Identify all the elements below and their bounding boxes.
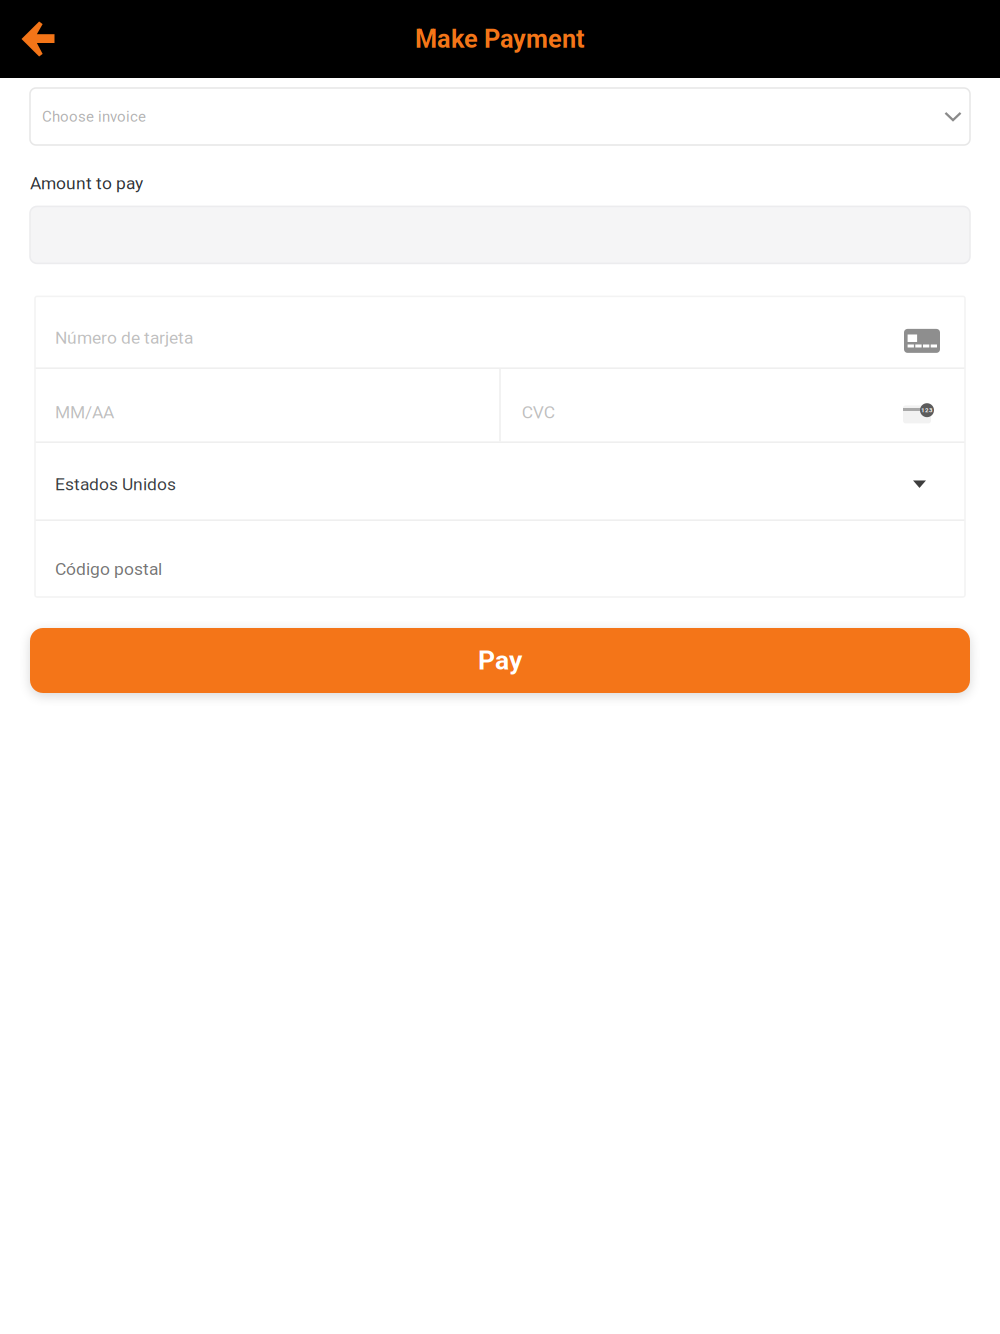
staticText: Número de tarjeta [55, 328, 193, 348]
button[interactable]: Back [0, 0, 76, 78]
staticText: CVC [522, 402, 555, 422]
staticText: 123 [921, 407, 933, 414]
staticText: Código postal [55, 559, 162, 579]
button[interactable]: Choose invoice [30, 88, 970, 145]
staticText: Pay [478, 645, 522, 676]
staticText: MM/AA [55, 402, 114, 422]
button[interactable]: Pay [30, 628, 970, 693]
staticText: Make Payment [415, 24, 585, 54]
staticText: Amount to pay [30, 173, 143, 193]
staticText: Estados Unidos [55, 474, 176, 494]
staticText: Choose invoice [42, 108, 146, 125]
